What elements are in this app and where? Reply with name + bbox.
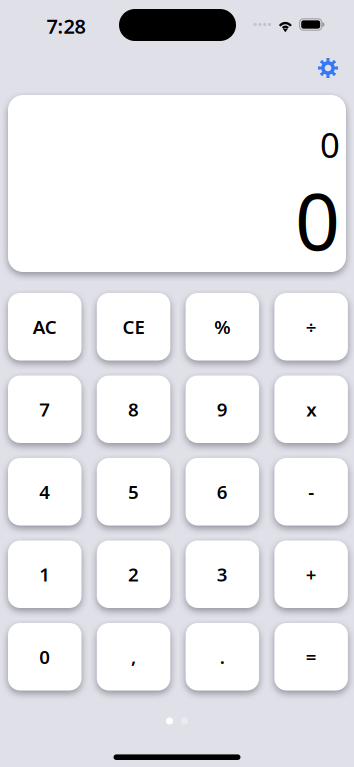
staticText: 7 [39,397,50,422]
button[interactable]: 5 [97,458,170,525]
staticText: ÷ [306,314,317,339]
button[interactable]: AC [8,293,81,360]
button[interactable]: CE [97,293,170,360]
button[interactable]: , [97,623,170,690]
button[interactable]: - [274,458,348,525]
staticText: = [306,644,317,669]
staticText: + [306,562,317,587]
button[interactable]: 7 [8,375,81,443]
button[interactable]: 4 [8,458,81,525]
staticText: AC [33,314,57,339]
staticText: 6 [217,479,228,504]
button[interactable]: 8 [97,375,170,443]
button[interactable]: . [186,623,259,690]
staticText: 5 [128,479,139,504]
button[interactable]: 0 [8,623,81,690]
button[interactable]: % [186,293,259,360]
staticText: 0 [39,644,50,669]
button[interactable]: ÷ [274,293,348,360]
button[interactable]: 1 [8,540,81,608]
staticText: 7:28 [46,13,85,39]
staticText: 0 [295,167,340,272]
button[interactable]: 6 [186,458,259,525]
button[interactable]: 2 [97,540,170,608]
staticText: 4 [39,479,50,504]
staticText: 9 [217,397,228,422]
staticText: x [306,397,316,422]
button[interactable]: = [274,623,348,690]
staticText: 8 [128,397,139,422]
staticText: 2 [128,562,139,587]
staticText: 0 [320,121,340,167]
button[interactable]: 9 [186,375,259,443]
button[interactable]: 3 [186,540,259,608]
staticText: - [308,479,314,504]
staticText: 3 [217,562,228,587]
button[interactable]: Settings [308,50,348,86]
staticText: % [214,314,230,339]
staticText: . [220,644,225,669]
button[interactable]: x [274,375,348,443]
staticText: 1 [39,562,50,587]
button[interactable]: + [274,540,348,608]
staticText: , [131,644,136,669]
staticText: CE [122,314,144,339]
